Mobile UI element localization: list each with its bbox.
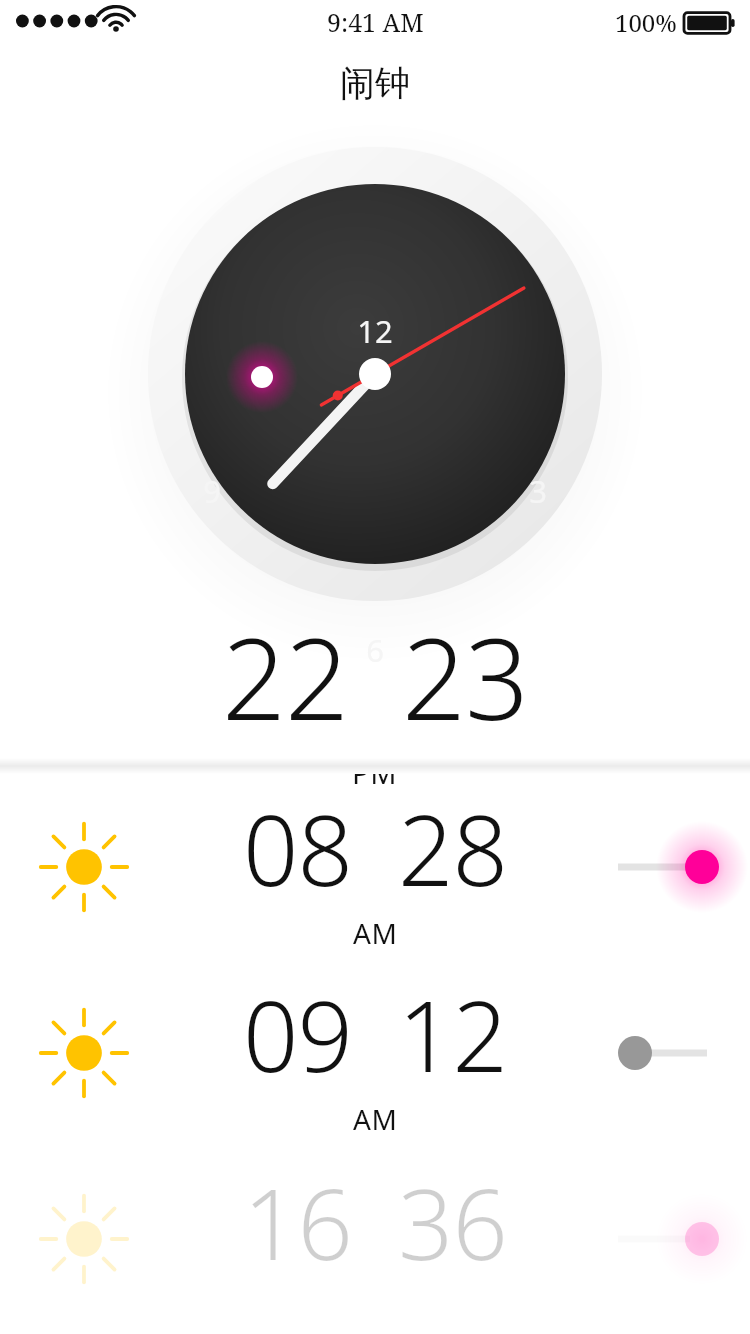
button[interactable]: Alarm off [582, 960, 750, 1146]
staticText: 3 [529, 470, 547, 512]
staticText: AM [353, 914, 398, 952]
button[interactable]: Alarm on [582, 1146, 750, 1332]
staticText: 09 [243, 968, 352, 1100]
staticText: 9 [203, 470, 221, 512]
staticText: 22 [222, 600, 348, 753]
button[interactable]: Alarm sound [0, 1146, 168, 1332]
staticText: 12 [357, 310, 393, 352]
staticText: 36 [398, 1156, 507, 1288]
button[interactable]: Alarm sound [0, 1146, 750, 1332]
button[interactable]: Alarm on [582, 774, 750, 960]
staticText: 12 [398, 968, 507, 1100]
staticText: 100% [615, 6, 677, 39]
button[interactable]: Alarm sound [0, 960, 168, 1146]
staticText: PM [352, 753, 398, 792]
staticText: 闹钟 [340, 61, 410, 105]
button[interactable]: Alarm sound [0, 774, 750, 960]
staticText: 16 [243, 1156, 352, 1288]
staticText: 23 [402, 600, 528, 753]
staticText: 9:41 AM [327, 5, 424, 39]
staticText: 28 [398, 782, 507, 914]
staticText: 08 [243, 782, 352, 914]
staticText: AM [353, 1100, 398, 1138]
button[interactable]: Alarm sound [0, 960, 750, 1146]
staticText: 6 [366, 629, 384, 671]
button[interactable]: Alarm sound [0, 774, 168, 960]
